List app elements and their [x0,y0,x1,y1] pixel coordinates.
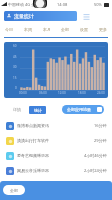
button[interactable]: 详情 [12,107,22,112]
button[interactable]: 全部 [60,27,70,32]
staticText: 4小时46分钟 [84,153,107,158]
button[interactable]: Menu [82,12,91,21]
staticText: 50% [94,2,102,7]
staticText: 12:00 [58,91,66,95]
staticText: 滴滴出行打车软件 [17,138,49,143]
staticText: 15 [13,76,17,80]
staticText: 流量统计 [14,13,34,19]
staticText: 16分钟 [94,123,107,128]
button[interactable]: 全部应用流量 [62,105,104,114]
staticText: 00:00 [19,91,27,95]
button[interactable]: 更多 [98,27,108,32]
staticText: 0 [15,86,17,90]
other: Back [6,13,12,19]
button[interactable]: Back [4,11,77,21]
staticText: 全部 [61,27,69,32]
staticText: 中国移动 4G 全部 [8,2,40,7]
staticText: 全部 [10,188,18,193]
staticText: 本月 [43,27,51,32]
staticText: 本周 [24,27,32,32]
staticText: 统计 [34,108,42,113]
button[interactable]: 本周 [23,27,33,32]
staticText: 网易云音乐播放器 [17,168,49,173]
staticText: 18:00 [78,91,86,95]
staticText: 设置 [80,27,88,32]
staticText: 24:00 [97,91,105,95]
staticText: 详情 [13,107,21,112]
staticText: 29分钟 [94,138,107,143]
button[interactable]: 网易云音乐播放器 [0,163,112,178]
staticText: 爱奇艺视频播放器 [17,153,49,158]
staticText: 60 [13,44,17,48]
staticText: 全部应用流量 [67,107,91,112]
staticText: 更多 [99,27,107,32]
button[interactable]: 微博看点新闻资讯 [0,118,112,133]
button[interactable]: 爱奇艺视频播放器 [0,148,112,163]
staticText: 45 [13,55,17,59]
staticText: 06:00 [39,91,47,95]
staticText: 2小时24分钟 [84,168,107,173]
button[interactable]: 今日 [4,27,14,32]
staticText: 微博看点新闻资讯 [17,123,49,128]
staticText: 14:08 [57,2,68,7]
staticText: 今日 [5,27,13,32]
button[interactable]: 滴滴出行打车软件 [0,133,112,148]
button[interactable]: 全部 [3,185,25,195]
button[interactable]: 设置 [79,27,89,32]
staticText: 30 [13,65,17,69]
button[interactable]: 本月 [42,27,52,32]
button[interactable]: 统计 [29,106,46,114]
